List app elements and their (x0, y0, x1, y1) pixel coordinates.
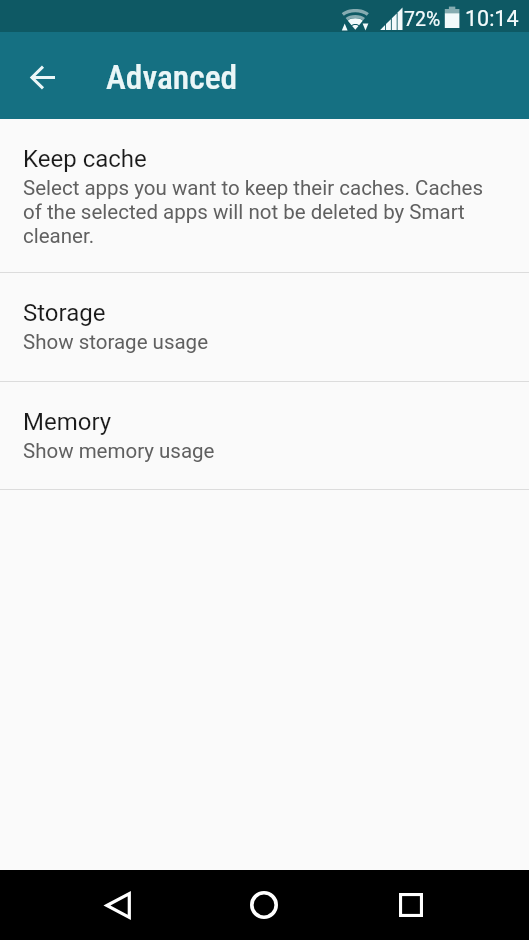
button[interactable]: Back (74, 870, 162, 940)
button[interactable]: Memory (0, 382, 529, 489)
staticText: 10:14 (465, 6, 519, 31)
staticText: Show storage usage (23, 330, 209, 354)
staticText: Advanced (106, 58, 238, 97)
button[interactable]: Recent apps (367, 870, 455, 940)
staticText: Keep cache (23, 145, 147, 173)
button[interactable]: Storage (0, 273, 529, 381)
button[interactable]: Navigate up (14, 49, 70, 105)
staticText: 72% (404, 8, 441, 31)
button[interactable]: Home (220, 870, 308, 940)
staticText: Storage (23, 299, 106, 327)
staticText: Show memory usage (23, 439, 215, 463)
staticText: Memory (23, 408, 112, 436)
staticText: Select apps you want to keep their cache… (23, 176, 485, 248)
button[interactable]: Keep cache (0, 119, 529, 272)
